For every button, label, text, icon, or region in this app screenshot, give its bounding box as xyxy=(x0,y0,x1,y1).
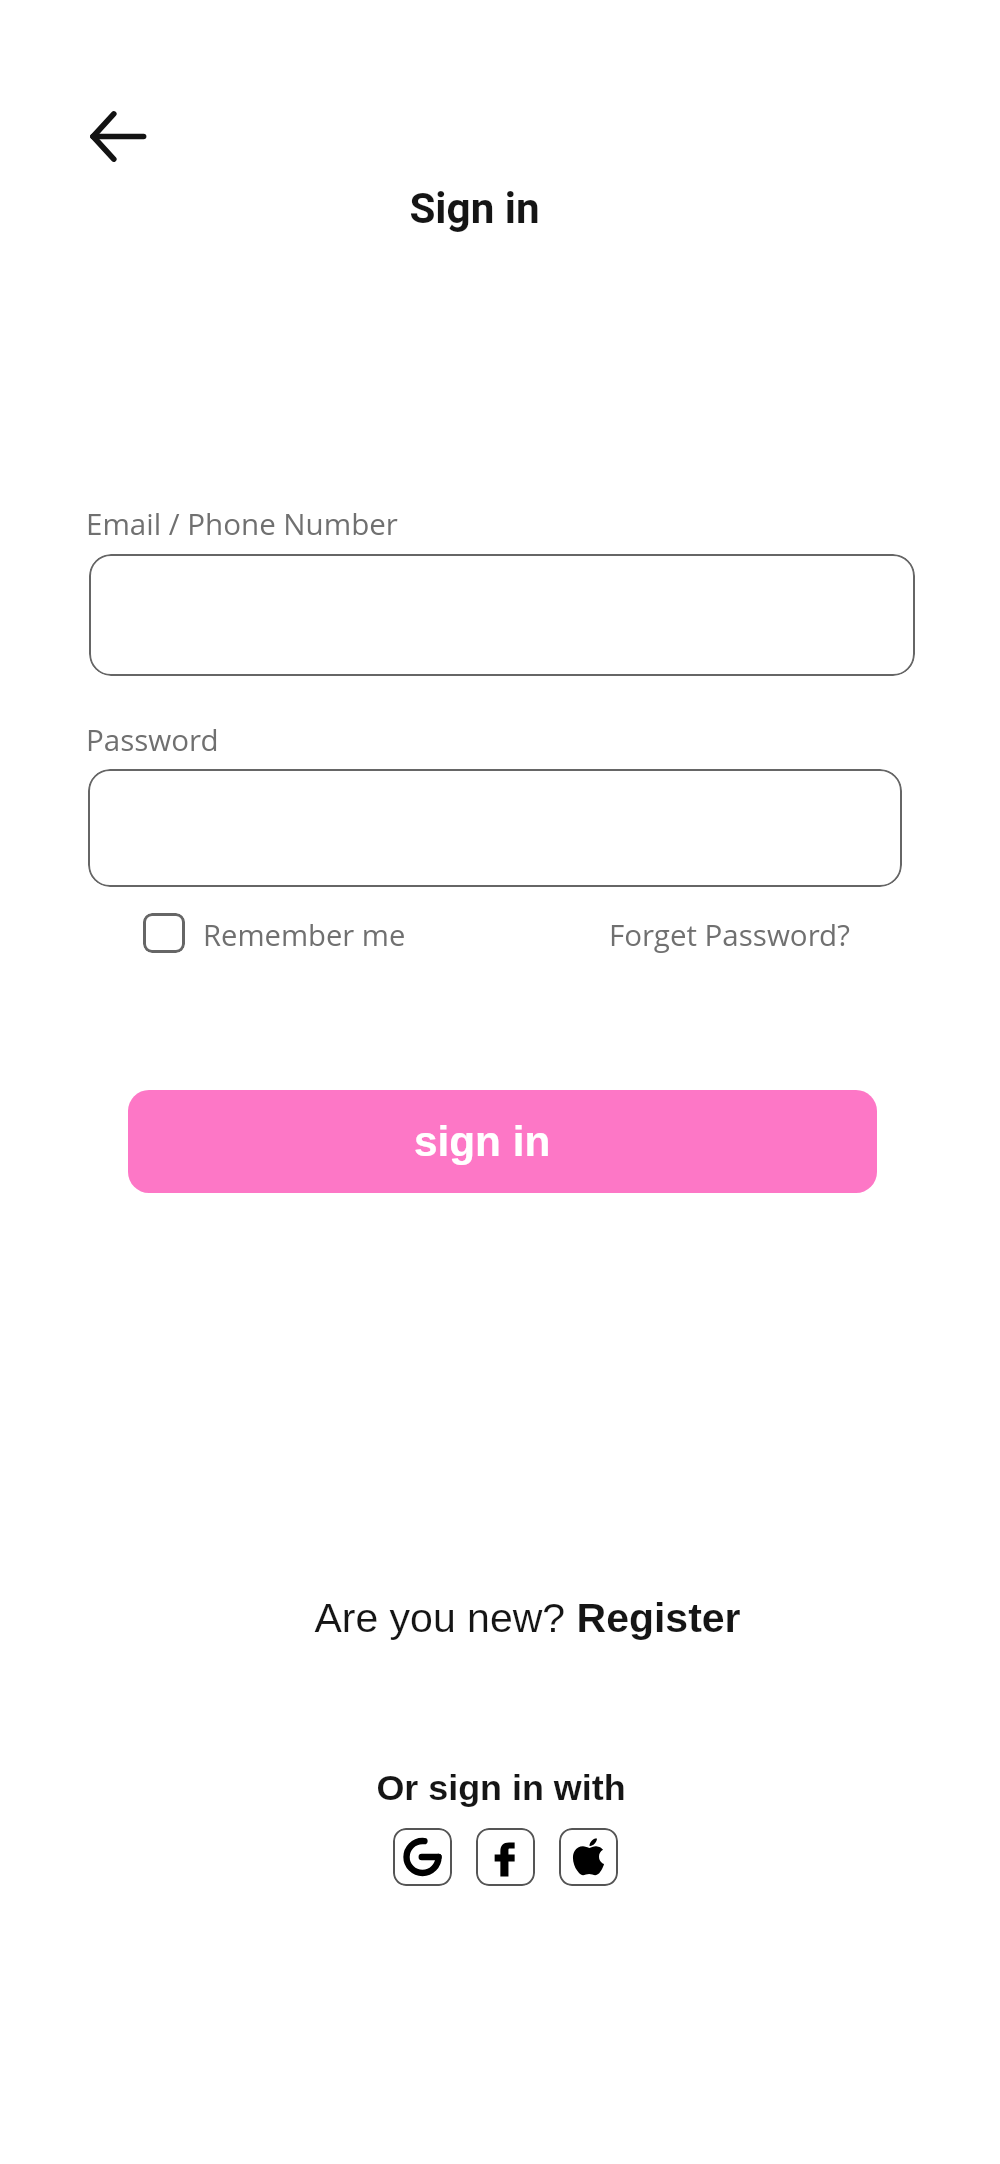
staticText: Or sign in with xyxy=(376,1768,626,1808)
staticText: sign in xyxy=(414,1118,551,1165)
staticText: Forget Password? xyxy=(609,914,850,954)
button[interactable]: Are you new? Register xyxy=(227,1595,827,1641)
button[interactable]: Sign in with Facebook xyxy=(476,1828,535,1886)
button[interactable]: sign in xyxy=(128,1090,877,1193)
button[interactable]: Remember me xyxy=(143,905,406,961)
staticText: Email / Phone Number xyxy=(86,503,398,543)
button[interactable]: Or sign in with xyxy=(201,1768,801,1808)
staticText: Remember me xyxy=(203,915,406,955)
staticText: Are you new? Register xyxy=(314,1595,741,1641)
button[interactable] xyxy=(89,554,915,676)
staticText: Sign in xyxy=(409,184,540,233)
button[interactable]: Back xyxy=(69,88,165,184)
button[interactable]: Sign in with Apple xyxy=(559,1828,618,1886)
button[interactable]: Forget Password? xyxy=(609,910,850,958)
staticText: Password xyxy=(86,719,219,759)
button[interactable]: Sign in with Google xyxy=(393,1828,452,1886)
button[interactable]: Sign in xyxy=(174,184,774,233)
button[interactable] xyxy=(88,769,902,887)
